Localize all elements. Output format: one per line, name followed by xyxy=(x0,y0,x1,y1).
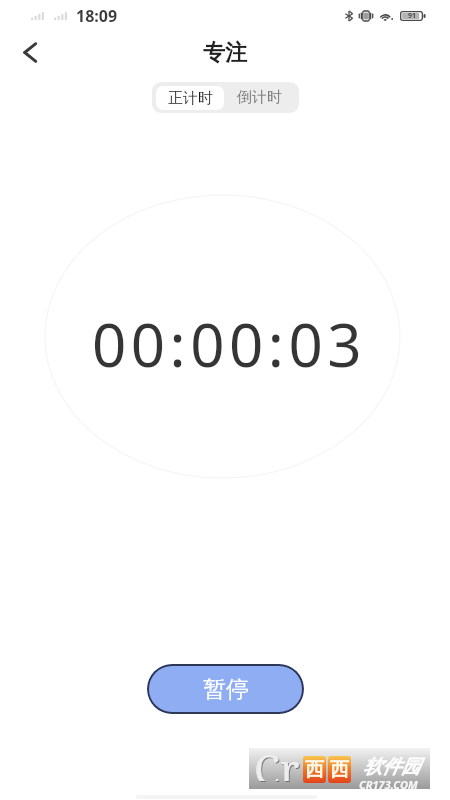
staticText: 西 xyxy=(305,758,324,782)
staticText: 18:09 xyxy=(76,5,118,27)
staticText: 西 xyxy=(330,758,349,782)
staticText: 91 xyxy=(408,11,417,21)
staticText: 正计时 xyxy=(168,89,213,108)
staticText: CR173.COM xyxy=(359,777,418,792)
staticText: 软件园 xyxy=(363,755,420,779)
staticText: Cr xyxy=(255,741,301,782)
staticText: 暂停 xyxy=(203,675,249,704)
staticText: 倒计时 xyxy=(237,88,282,107)
staticText: Cr xyxy=(254,740,300,781)
button[interactable]: 倒计时 xyxy=(224,82,295,113)
staticText: 00:00:03 xyxy=(4,303,450,385)
button[interactable]: Back xyxy=(8,30,52,74)
button[interactable]: 正计时 xyxy=(156,86,224,110)
button[interactable]: 暂停 xyxy=(147,664,304,714)
staticText: 专注 xyxy=(203,39,247,67)
